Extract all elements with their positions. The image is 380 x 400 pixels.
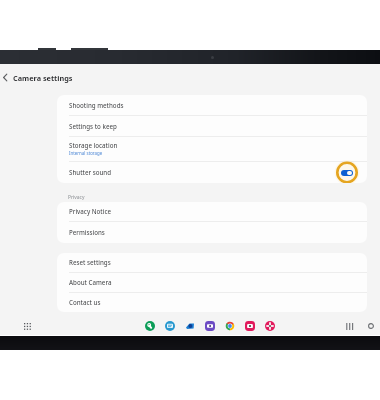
button[interactable]: Messages [165,321,175,331]
button[interactable]: Shutter sound [57,162,367,183]
button[interactable]: Mail [185,321,195,331]
staticText: Shutter sound [69,168,112,176]
staticText: Camera settings [13,73,73,83]
button[interactable]: YouTube [245,321,255,331]
staticText: Reset settings [69,258,111,266]
button[interactable]: Back [0,71,13,84]
staticText: About Camera [69,278,112,286]
staticText: Internal storage [69,150,103,156]
button[interactable]: Privacy Notice [57,202,367,222]
staticText: Privacy [68,194,85,201]
staticText: Storage location [69,141,118,149]
staticText: Shooting methods [69,101,124,109]
button[interactable]: All apps [21,320,33,332]
button[interactable]: Chrome [225,321,235,331]
button[interactable]: Shutter sound [335,162,359,183]
staticText: Permissions [69,228,105,236]
button[interactable]: About Camera [57,273,367,293]
button[interactable]: Settings to keep [57,116,367,137]
staticText: Contact us [69,298,101,306]
button[interactable]: Contact us [57,293,367,312]
button[interactable]: Shooting methods [57,95,367,116]
button[interactable]: Reset settings [57,253,367,273]
button[interactable]: Photos [265,321,275,331]
button[interactable]: Storage location [57,137,367,162]
staticText: Settings to keep [69,122,117,130]
button[interactable]: Home [365,320,377,332]
button[interactable]: Phone [145,321,155,331]
button[interactable]: Permissions [57,222,367,243]
button[interactable]: Recents [343,320,355,332]
staticText: Privacy Notice [69,207,111,215]
button[interactable]: Media [205,321,215,331]
